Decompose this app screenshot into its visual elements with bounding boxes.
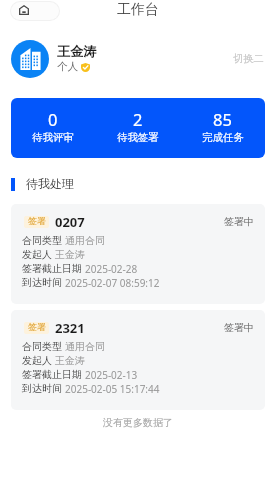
staticText: 发起人 — [22, 356, 52, 367]
button[interactable]: 王金涛 — [0, 36, 270, 82]
staticText: 个人 — [57, 62, 78, 73]
staticText: 85 — [213, 113, 232, 130]
button[interactable]: 0 — [11, 113, 95, 144]
staticText: 2025-02-13 — [85, 370, 138, 381]
staticText: 到达时间 — [22, 384, 62, 395]
staticText: 待我处理 — [26, 178, 74, 191]
staticText: 签署 — [28, 217, 46, 227]
button[interactable]: Home — [11, 2, 59, 20]
button[interactable]: 待我处理 — [11, 176, 74, 192]
staticText: 签署截止日期 — [22, 370, 82, 381]
staticText: 2025-02-05 15:17:44 — [65, 384, 160, 395]
button[interactable]: 签署 — [11, 310, 265, 410]
button[interactable]: 2 — [95, 113, 180, 144]
staticText: 0 — [48, 113, 58, 130]
staticText: 完成任务 — [202, 133, 244, 144]
staticText: 王金涛 — [57, 46, 97, 60]
staticText: 签署 — [28, 323, 46, 333]
staticText: 2025-02-28 — [85, 264, 138, 275]
staticText: 王金涛 — [55, 250, 85, 261]
staticText: 通用合同 — [65, 342, 105, 353]
staticText: 没有更多数据了 — [11, 416, 265, 429]
staticText: 待我评审 — [32, 133, 74, 144]
staticText: 签署截止日期 — [22, 264, 82, 275]
staticText: 王金涛 — [55, 356, 85, 367]
button[interactable]: 签署 — [11, 204, 265, 304]
staticText: 合同类型 — [22, 342, 62, 353]
staticText: 0207 — [55, 216, 85, 228]
staticText: 发起人 — [22, 250, 52, 261]
staticText: 2321 — [55, 322, 85, 334]
staticText: 待我签署 — [117, 133, 159, 144]
button[interactable]: 85 — [180, 113, 265, 144]
staticText: 2025-02-07 08:59:12 — [65, 278, 160, 289]
staticText: 2 — [133, 113, 143, 130]
staticText: 到达时间 — [22, 278, 62, 289]
staticText: 签署中 — [224, 217, 254, 228]
staticText: 通用合同 — [65, 236, 105, 247]
staticText: 签署中 — [224, 323, 254, 334]
staticText: 切换二 — [233, 54, 264, 65]
staticText: 工作台 — [3, 3, 270, 18]
staticText: 合同类型 — [22, 236, 62, 247]
